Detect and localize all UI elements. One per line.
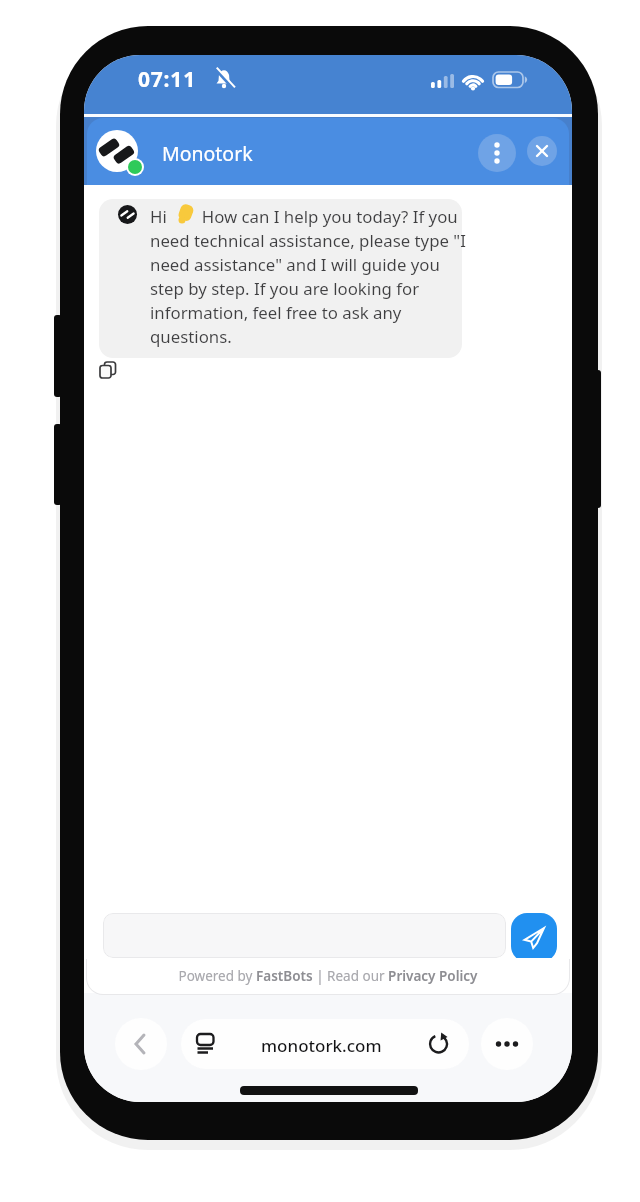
staticText: 07:11 bbox=[138, 65, 196, 94]
button[interactable] bbox=[115, 1018, 167, 1070]
button[interactable]: Monotork bbox=[162, 140, 253, 167]
button[interactable]: Powered by FastBots | Read our Privacy P… bbox=[84, 967, 572, 985]
button[interactable] bbox=[511, 913, 557, 962]
button[interactable] bbox=[478, 134, 516, 172]
button[interactable]: monotork.com bbox=[181, 1019, 469, 1069]
button[interactable] bbox=[527, 136, 557, 166]
staticText: monotork.com bbox=[261, 1034, 382, 1057]
staticText: Hi How can I help you today? If you need… bbox=[150, 205, 466, 348]
button[interactable] bbox=[481, 1018, 533, 1070]
button[interactable] bbox=[99, 361, 118, 380]
